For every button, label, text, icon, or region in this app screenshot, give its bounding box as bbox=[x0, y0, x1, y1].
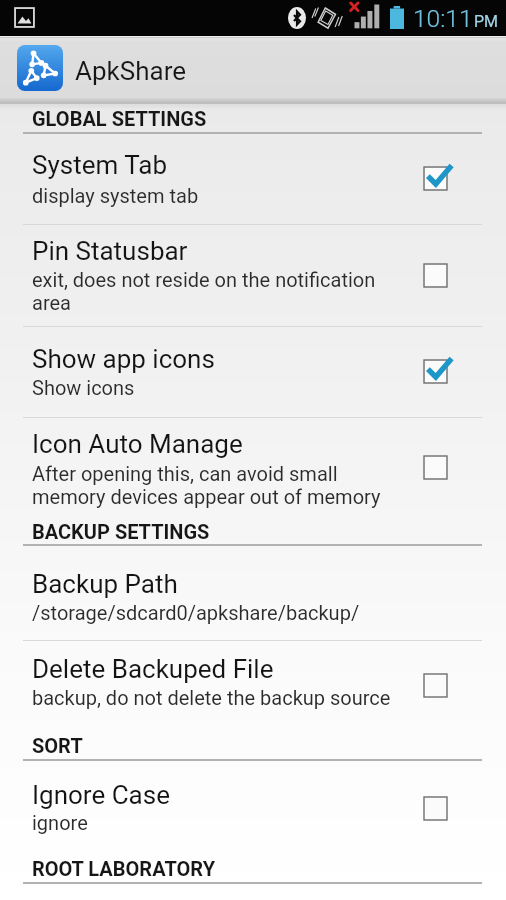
button[interactable]: Unchecked bbox=[406, 661, 464, 709]
button[interactable] bbox=[0, 640, 506, 730]
staticText: PM bbox=[474, 12, 499, 31]
staticText: BACKUP SETTINGS bbox=[32, 520, 210, 543]
button[interactable]: Unchecked bbox=[406, 251, 464, 299]
button[interactable] bbox=[0, 326, 506, 417]
staticText: Ignore Case bbox=[32, 780, 170, 810]
staticText: Delete Backuped File bbox=[32, 654, 274, 684]
button[interactable] bbox=[0, 546, 506, 640]
staticText: GLOBAL SETTINGS bbox=[32, 107, 207, 130]
button[interactable] bbox=[0, 134, 506, 225]
staticText: memory devices appear out of memory bbox=[32, 485, 381, 508]
button[interactable] bbox=[0, 417, 506, 517]
button[interactable]: Unchecked bbox=[406, 784, 464, 832]
staticText: exit, does not reside on the notificatio… bbox=[32, 268, 376, 291]
button[interactable] bbox=[0, 761, 506, 855]
staticText: Backup Path bbox=[32, 569, 178, 599]
staticText: SORT bbox=[32, 734, 83, 757]
staticText: ApkShare bbox=[75, 56, 186, 86]
staticText: 10:11 bbox=[413, 4, 473, 33]
staticText: System Tab bbox=[32, 150, 168, 180]
button[interactable]: Checked bbox=[406, 154, 464, 202]
button[interactable]: Unchecked bbox=[406, 443, 464, 491]
staticText: Icon Auto Manage bbox=[32, 429, 243, 459]
staticText: Show app icons bbox=[32, 344, 215, 374]
staticText: Show icons bbox=[32, 376, 135, 399]
button[interactable] bbox=[0, 224, 506, 326]
staticText: backup, do not delete the backup source bbox=[32, 686, 391, 709]
button[interactable]: ApkShare bbox=[17, 45, 63, 91]
staticText: ROOT LABORATORY bbox=[32, 857, 216, 880]
staticText: ignore bbox=[32, 811, 88, 834]
staticText: /storage/sdcard0/apkshare/backup/ bbox=[32, 601, 360, 624]
staticText: display system tab bbox=[32, 184, 199, 207]
staticText: Pin Statusbar bbox=[32, 236, 188, 266]
button[interactable]: Checked bbox=[406, 347, 464, 395]
staticText: area bbox=[32, 291, 71, 314]
staticText: After opening this, can avoid small bbox=[32, 462, 338, 485]
